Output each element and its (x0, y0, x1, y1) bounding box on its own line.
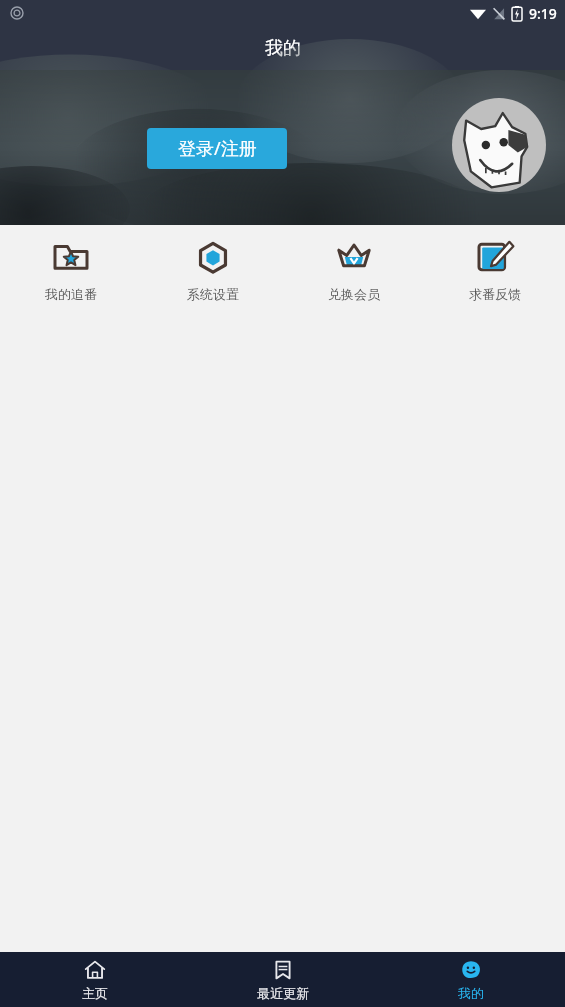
staticText: 我的 (458, 985, 484, 1001)
staticText: 系统设置 (187, 286, 239, 302)
button[interactable]: Avatar (452, 98, 546, 192)
button[interactable]: 主页 (0, 952, 189, 1007)
staticText: 我的 (265, 37, 301, 60)
button[interactable]: 兑换会员 (283, 235, 424, 304)
staticText: 登录/注册 (178, 136, 257, 161)
staticText: 9:19 (529, 4, 557, 23)
staticText: 我的追番 (45, 286, 97, 302)
button[interactable]: 我的追番 (0, 235, 142, 304)
button[interactable]: 求番反馈 (424, 235, 565, 304)
button[interactable]: 我的 (377, 952, 565, 1007)
button[interactable]: 登录/注册 (147, 128, 287, 169)
staticText: 最近更新 (257, 985, 309, 1001)
staticText: 兑换会员 (328, 286, 380, 302)
staticText: 求番反馈 (469, 286, 521, 302)
staticText: 主页 (82, 985, 108, 1001)
button[interactable]: 系统设置 (142, 235, 283, 304)
button[interactable]: 最近更新 (189, 952, 377, 1007)
